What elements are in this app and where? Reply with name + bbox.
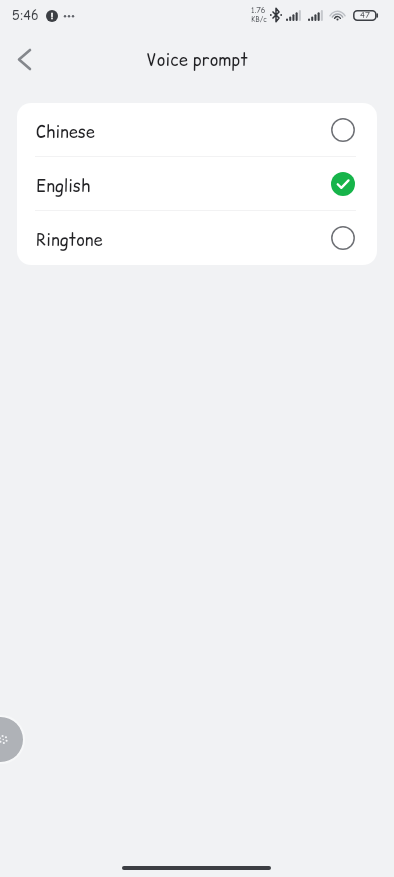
staticText: 47 <box>360 10 370 21</box>
staticText: 1.76 <box>251 5 266 15</box>
staticText: Voice prompt <box>146 48 248 71</box>
staticText: Chinese <box>36 121 95 144</box>
staticText: Ringtone <box>36 229 103 252</box>
staticText: KB/c <box>251 15 267 25</box>
staticText: English <box>36 175 91 198</box>
button[interactable]: Chinese <box>17 103 377 157</box>
button[interactable]: English <box>17 157 377 211</box>
button[interactable]: Assistive touch <box>0 715 25 764</box>
button[interactable]: Ringtone <box>17 211 377 265</box>
button[interactable]: Back <box>1 36 47 82</box>
staticText: 5:46 <box>12 7 39 24</box>
